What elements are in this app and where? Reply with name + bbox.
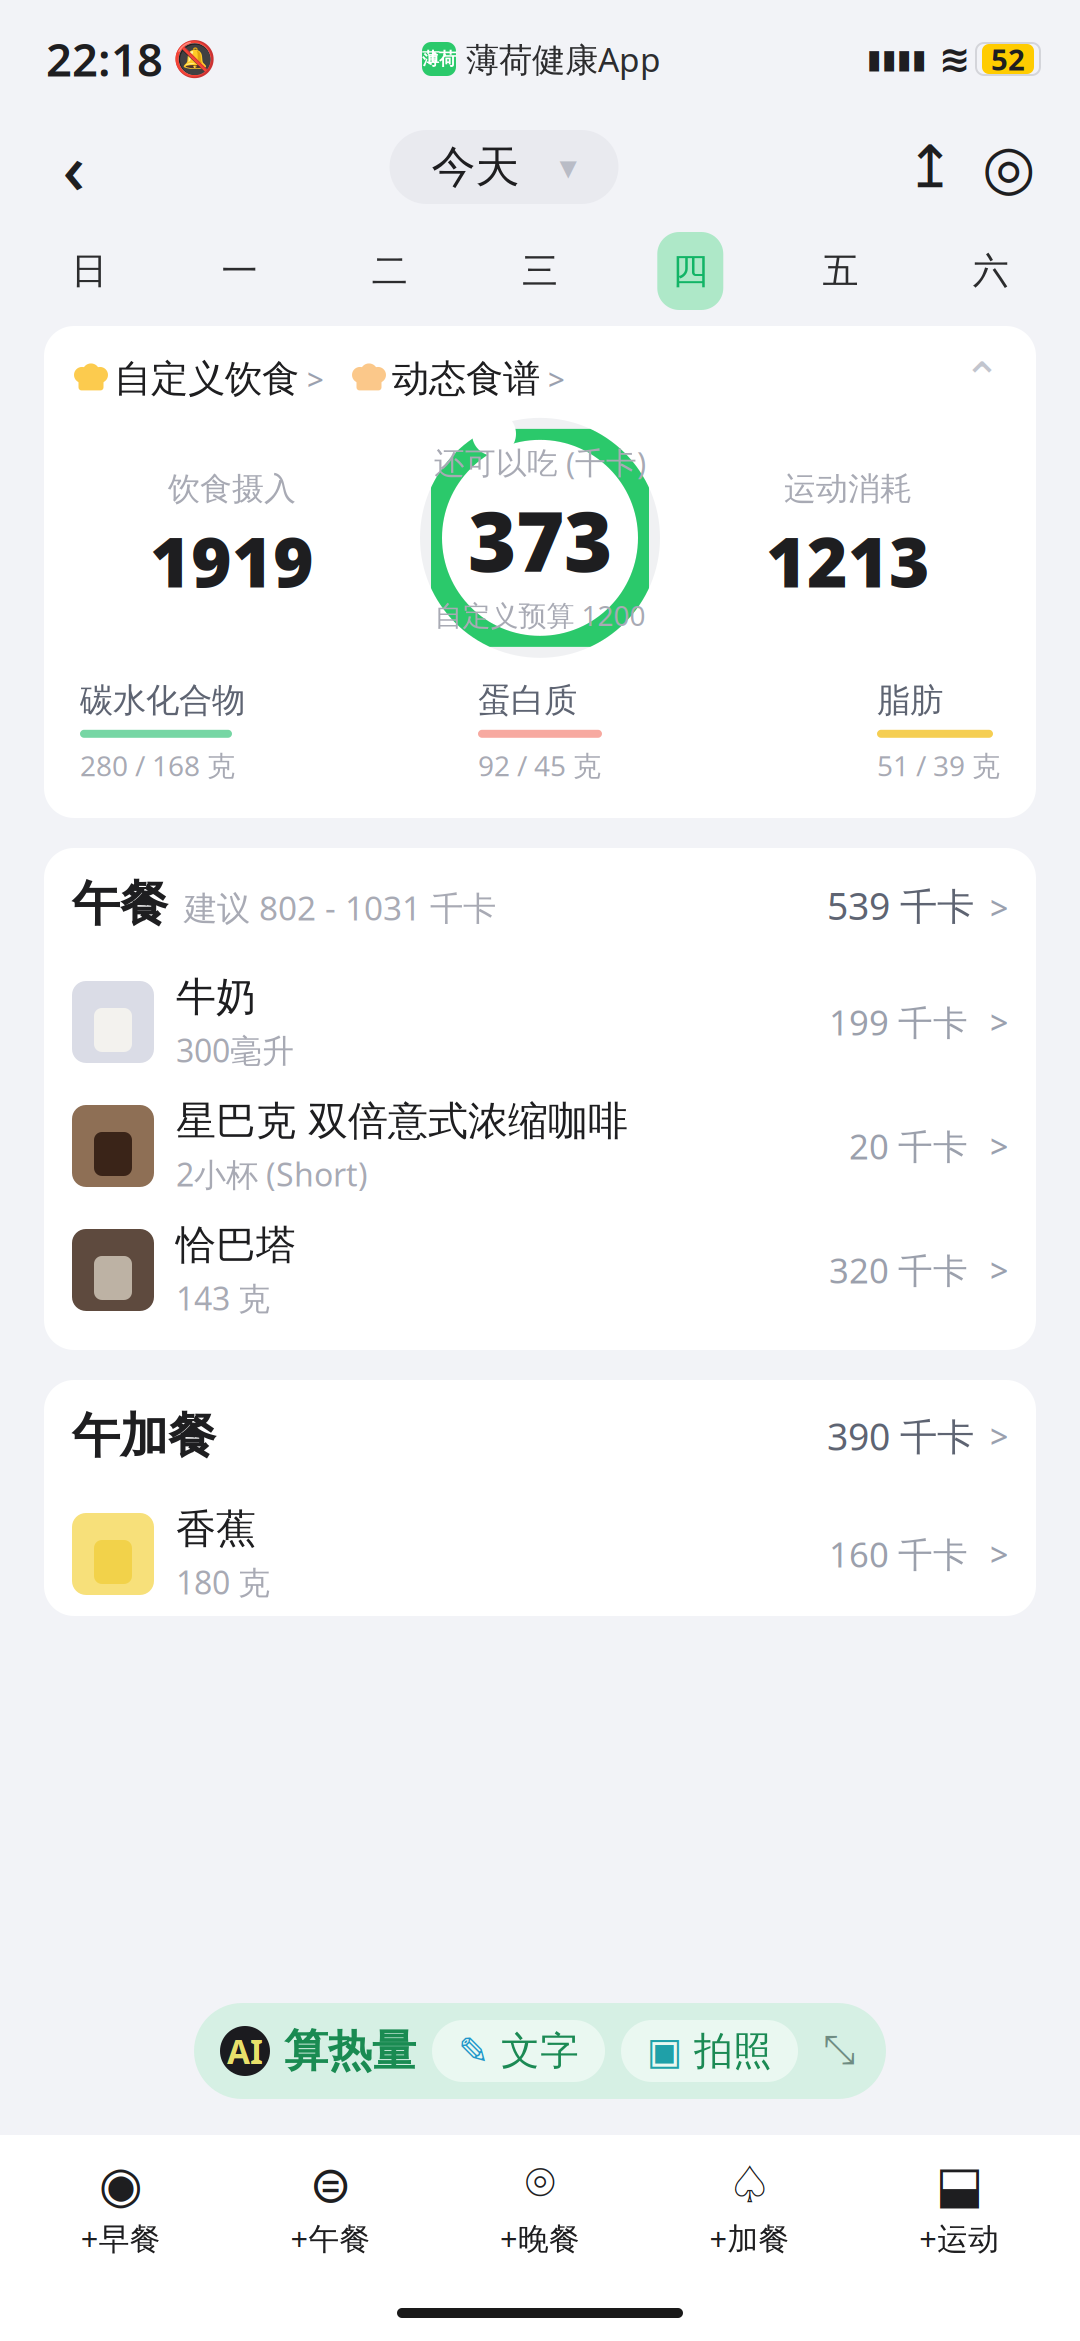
button[interactable]: 收起工具栏 — [814, 2026, 864, 2076]
staticText: ⬓ — [935, 2156, 983, 2213]
staticText: 22:18 — [46, 29, 163, 89]
staticText: +加餐 — [710, 2218, 790, 2258]
button[interactable]: 四 — [657, 232, 723, 310]
staticText: ↥ — [905, 134, 954, 200]
staticText: ▮▮▮▮ — [867, 44, 927, 74]
staticText: 280 / 168 克 — [80, 747, 235, 784]
staticText: ⤡ — [823, 2031, 855, 2070]
button[interactable]: 恰巴塔 — [44, 1208, 1036, 1332]
staticText: 四 — [672, 249, 708, 293]
staticText: 饮食摄入 — [168, 469, 296, 508]
staticText: +午餐 — [290, 2218, 370, 2258]
staticText: 五 — [823, 249, 859, 293]
staticText: 539 千卡 — [827, 881, 974, 930]
staticText: > — [990, 1533, 1008, 1575]
staticText: 拍照 — [694, 2027, 772, 2075]
staticText: 52 — [991, 39, 1025, 78]
staticText: 199 千卡 — [829, 999, 968, 1045]
staticText: 373 — [468, 485, 612, 594]
staticText: 2小杯 (Short) — [176, 1153, 368, 1195]
button[interactable]: 日 — [56, 232, 122, 310]
button[interactable]: 返回 — [44, 137, 104, 197]
button[interactable]: 香蕉 — [44, 1492, 1036, 1616]
staticText: 日 — [71, 249, 107, 293]
staticText: 180 克 — [176, 1561, 270, 1603]
button[interactable]: AI — [216, 2024, 416, 2078]
staticText: ⌃ — [963, 353, 1001, 405]
staticText: 1213 — [766, 514, 930, 607]
staticText: +运动 — [919, 2218, 999, 2258]
button[interactable]: ⬓ — [854, 2156, 1064, 2264]
staticText: > — [990, 1249, 1008, 1291]
staticText: 薄荷 — [422, 48, 456, 70]
staticText: 160 千卡 — [829, 1531, 968, 1577]
staticText: 143 克 — [176, 1277, 270, 1319]
staticText: 一 — [221, 249, 257, 293]
button[interactable]: 自定义饮食 — [76, 356, 324, 402]
staticText: 1919 — [150, 514, 314, 607]
button[interactable]: 分享 — [904, 139, 956, 195]
staticText: ≋ — [939, 38, 970, 80]
staticText: 自定义饮食 — [114, 356, 299, 402]
staticText: 三 — [522, 249, 558, 293]
staticText: 🔕 — [173, 39, 216, 79]
staticText: 390 千卡 — [827, 1411, 974, 1461]
button[interactable]: ♤ — [645, 2156, 854, 2264]
staticText: 二 — [372, 249, 408, 293]
staticText: 算热量 — [284, 2024, 416, 2078]
button[interactable]: 设置 — [982, 139, 1036, 195]
staticText: 文字 — [501, 2027, 579, 2075]
staticText: ▣ — [647, 2030, 682, 2072]
staticText: +晚餐 — [500, 2218, 580, 2258]
button[interactable]: ⊜ — [226, 2156, 435, 2264]
staticText: 建议 802 - 1031 千卡 — [184, 885, 496, 930]
staticText: 蛋白质 — [478, 680, 577, 721]
staticText: 星巴克 双倍意式浓缩咖啡 — [176, 1097, 628, 1146]
staticText: 香蕉 — [176, 1505, 256, 1554]
button[interactable]: ◉ — [16, 2156, 226, 2264]
staticText: 20 千卡 — [849, 1123, 968, 1169]
staticText: 运动消耗 — [784, 469, 912, 508]
staticText: 牛奶 — [176, 973, 256, 1022]
button[interactable]: 一 — [206, 232, 272, 310]
staticText: > — [990, 1415, 1008, 1457]
button[interactable]: 午餐 — [44, 848, 1036, 960]
button[interactable]: 动态食谱 — [354, 356, 565, 402]
button[interactable]: 收起 — [960, 357, 1004, 401]
button[interactable]: 五 — [808, 232, 874, 310]
staticText: 300毫升 — [176, 1029, 294, 1071]
staticText: 自定义预算 1200 — [434, 596, 645, 634]
staticText: > — [990, 1001, 1008, 1043]
button[interactable]: 星巴克 双倍意式浓缩咖啡 — [44, 1084, 1036, 1208]
staticText: ⌾ — [525, 2160, 555, 2209]
staticText: > — [990, 1125, 1008, 1167]
button[interactable]: 牛奶 — [44, 960, 1036, 1084]
staticText: ‹ — [62, 121, 85, 213]
staticText: ⊜ — [309, 2156, 351, 2213]
staticText: ◎ — [982, 132, 1036, 202]
staticText: 午加餐 — [72, 1406, 216, 1465]
staticText: ◉ — [99, 2156, 143, 2213]
staticText: 今天 — [431, 140, 519, 194]
staticText: ♤ — [727, 2156, 772, 2213]
staticText: 午餐 — [72, 874, 168, 933]
staticText: 六 — [973, 249, 1009, 293]
button[interactable]: 三 — [507, 232, 573, 310]
staticText: ✎ — [458, 2030, 489, 2072]
staticText: 92 / 45 克 — [478, 747, 601, 784]
button[interactable]: 二 — [357, 232, 423, 310]
button[interactable]: ✎ — [432, 2020, 605, 2082]
staticText: AI — [227, 2029, 263, 2073]
button[interactable]: 今天 — [389, 130, 618, 204]
staticText: > — [990, 886, 1008, 929]
staticText: > — [548, 359, 565, 398]
staticText: 恰巴塔 — [176, 1221, 296, 1270]
staticText: 51 / 39 克 — [877, 747, 1000, 784]
button[interactable]: ⌾ — [435, 2156, 645, 2264]
staticText: 碳水化合物 — [80, 680, 245, 721]
staticText: 薄荷健康App — [466, 37, 661, 81]
staticText: 还可以吃 (千卡) — [434, 442, 646, 483]
button[interactable]: 六 — [958, 232, 1024, 310]
button[interactable]: ▣ — [621, 2020, 798, 2082]
button[interactable]: 午加餐 — [44, 1380, 1036, 1492]
